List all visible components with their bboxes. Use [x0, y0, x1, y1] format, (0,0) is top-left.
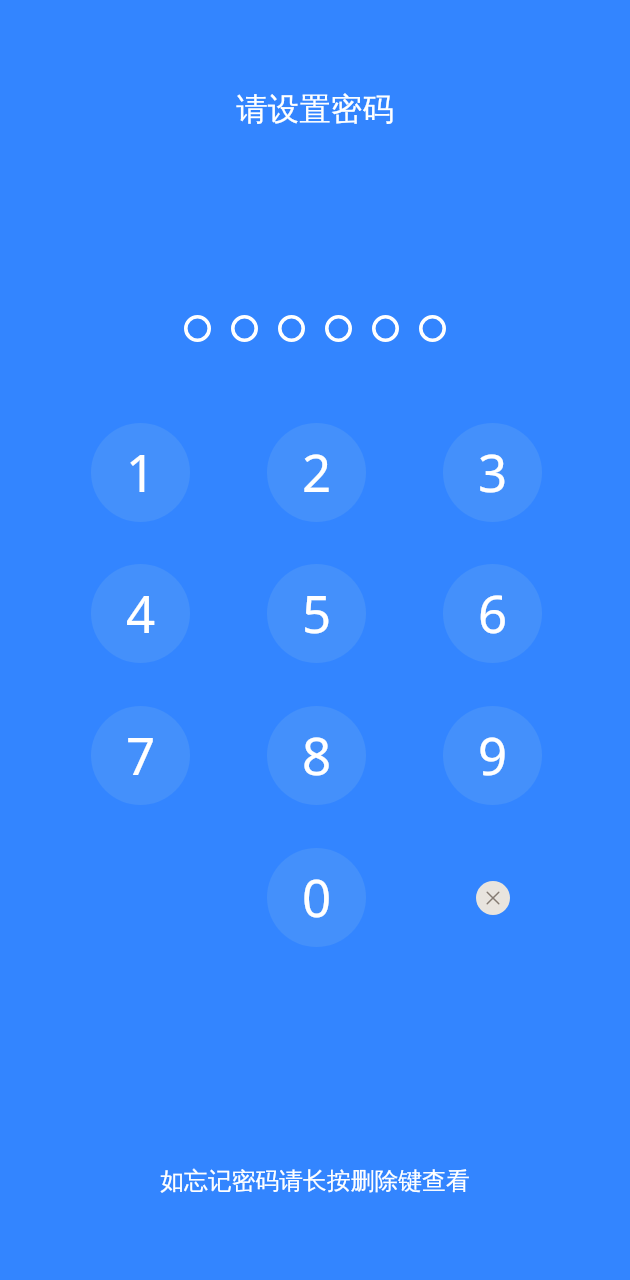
staticText: 5 — [302, 578, 332, 647]
button[interactable]: 7 — [91, 706, 190, 805]
button[interactable]: 6 — [443, 564, 542, 663]
staticText: 4 — [126, 578, 156, 647]
staticText: 请设置密码 — [236, 90, 394, 130]
staticText: 8 — [302, 720, 332, 789]
button[interactable]: 4 — [91, 564, 190, 663]
staticText: 1 — [126, 437, 156, 506]
button[interactable]: Delete — [443, 848, 542, 947]
staticText: 0 — [302, 862, 332, 931]
button[interactable]: 8 — [267, 706, 366, 805]
staticText: 6 — [478, 578, 508, 647]
staticText: 如忘记密码请长按删除键查看 — [160, 1166, 470, 1196]
staticText: 7 — [126, 720, 156, 789]
staticText: 3 — [478, 437, 508, 506]
staticText: 2 — [302, 437, 332, 506]
button[interactable]: 1 — [91, 423, 190, 522]
button[interactable]: 9 — [443, 706, 542, 805]
button[interactable]: 5 — [267, 564, 366, 663]
button[interactable]: 3 — [443, 423, 542, 522]
staticText: 9 — [478, 720, 508, 789]
button[interactable]: 0 — [267, 848, 366, 947]
button[interactable]: 2 — [267, 423, 366, 522]
